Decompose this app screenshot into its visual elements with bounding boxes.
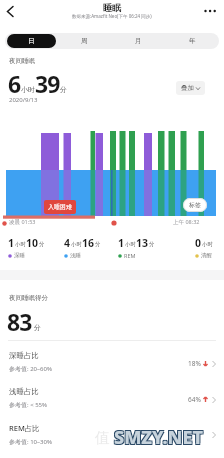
button[interactable]: REM占比 bbox=[0, 420, 224, 456]
staticText: 值 bbox=[95, 429, 110, 448]
staticText: 浅睡占比 bbox=[9, 387, 39, 396]
staticText: REM占比 bbox=[9, 423, 40, 433]
staticText: 16 bbox=[82, 236, 95, 250]
staticText: 入睡困难 bbox=[48, 203, 72, 211]
staticText: 10 bbox=[26, 236, 39, 250]
button[interactable] bbox=[2, 2, 20, 20]
staticText: 分 bbox=[95, 241, 101, 248]
button[interactable]: 月 bbox=[111, 33, 165, 49]
staticText: 4 bbox=[64, 236, 71, 250]
staticText: SMZY.NET bbox=[114, 425, 203, 450]
staticText: 小时 bbox=[71, 241, 82, 248]
staticText: 39 bbox=[35, 68, 60, 99]
staticText: 参考值: < 55% bbox=[9, 401, 48, 409]
staticText: 1 bbox=[8, 236, 15, 250]
staticText: 13 bbox=[136, 236, 149, 250]
staticText: 小时 bbox=[202, 241, 213, 248]
staticText: SMZY.NET bbox=[113, 426, 202, 451]
staticText: 清醒 bbox=[201, 252, 212, 259]
staticText: 分 bbox=[39, 241, 45, 248]
staticText: 日 bbox=[28, 37, 35, 45]
button[interactable]: 日 bbox=[5, 33, 58, 49]
staticText: SMZY.NET bbox=[115, 424, 204, 449]
staticText: 小时 bbox=[125, 241, 136, 248]
staticText: 数据来源:Amazfit Neo(下午 06:24 同步) bbox=[72, 13, 152, 19]
staticText: 小时 bbox=[15, 241, 26, 248]
button[interactable]: 年 bbox=[165, 33, 219, 49]
staticText: SMZY.NET bbox=[113, 424, 202, 449]
staticText: 分 bbox=[149, 241, 155, 248]
staticText: 睡眠 bbox=[103, 2, 121, 13]
staticText: 夜间睡眠 bbox=[9, 57, 35, 65]
staticText: 分 bbox=[60, 85, 67, 94]
staticText: 参考值: 10–30% bbox=[9, 438, 52, 446]
staticText: 18% bbox=[188, 359, 201, 368]
staticText: 参考值: 20–60% bbox=[9, 365, 52, 373]
staticText: 周 bbox=[81, 37, 88, 45]
staticText: 分 bbox=[34, 323, 41, 332]
staticText: 2020/9/13 bbox=[9, 96, 38, 104]
staticText: 浅睡 bbox=[70, 252, 81, 259]
staticText: 83 bbox=[7, 306, 32, 337]
staticText: 标签 bbox=[189, 201, 201, 209]
button[interactable]: 入睡困难 bbox=[44, 200, 76, 214]
staticText: 0 bbox=[195, 236, 202, 250]
staticText: 夜间睡眠得分 bbox=[9, 294, 48, 302]
staticText: REM bbox=[124, 252, 136, 259]
staticText: 凌晨 01:53 bbox=[9, 218, 36, 226]
staticText: 月 bbox=[135, 37, 142, 45]
staticText: 上午 08:32 bbox=[173, 218, 200, 226]
button[interactable]: 周 bbox=[58, 33, 111, 49]
staticText: 深睡 bbox=[14, 252, 25, 259]
staticText: 年 bbox=[189, 37, 196, 45]
staticText: 叠加 bbox=[181, 84, 194, 92]
staticText: SMZY.NET bbox=[115, 426, 204, 451]
staticText: 64% bbox=[188, 395, 201, 404]
staticText: 深睡占比 bbox=[9, 351, 39, 360]
button[interactable]: 深睡占比 bbox=[0, 348, 224, 384]
staticText: 小时 bbox=[21, 85, 35, 94]
button[interactable]: 浅睡占比 bbox=[0, 384, 224, 420]
button[interactable]: 叠加 bbox=[176, 81, 205, 95]
staticText: 1 bbox=[118, 236, 125, 250]
button[interactable]: 标签 bbox=[183, 198, 207, 212]
staticText: 6 bbox=[8, 68, 21, 99]
button[interactable] bbox=[202, 4, 220, 18]
